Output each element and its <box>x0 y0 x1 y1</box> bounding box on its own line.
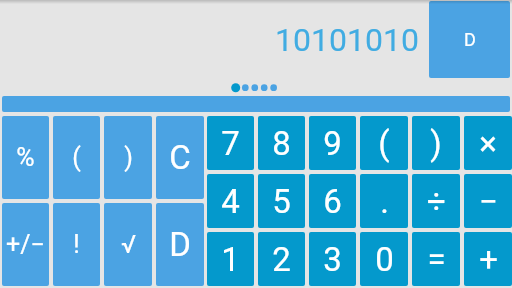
button[interactable]: 2 <box>258 232 305 286</box>
button[interactable]: % <box>2 116 49 199</box>
staticText: % <box>16 143 35 172</box>
button[interactable]: D <box>156 203 204 286</box>
button[interactable]: − <box>464 174 512 228</box>
staticText: +/− <box>6 230 45 259</box>
button[interactable]: ( <box>360 116 408 170</box>
staticText: + <box>479 240 498 279</box>
button[interactable]: 7 <box>207 116 254 170</box>
staticText: ( <box>72 143 81 172</box>
staticText: 6 <box>323 182 342 221</box>
staticText: 7 <box>221 124 240 163</box>
button[interactable]: 1 <box>207 232 254 286</box>
staticText: ! <box>73 230 80 259</box>
button[interactable]: ( <box>53 116 100 199</box>
button[interactable]: = <box>412 232 460 286</box>
staticText: 5 <box>272 182 291 221</box>
staticText: 0 <box>375 240 394 279</box>
staticText: ( <box>378 124 390 163</box>
button[interactable]: + <box>464 232 512 286</box>
button[interactable]: ) <box>104 116 152 199</box>
button[interactable]: +/− <box>2 203 49 286</box>
button[interactable]: 5 <box>258 174 305 228</box>
button[interactable]: 4 <box>207 174 254 228</box>
button[interactable]: D <box>429 1 510 78</box>
button[interactable]: C <box>156 116 204 199</box>
staticText: D <box>464 29 476 50</box>
button[interactable]: ) <box>412 116 460 170</box>
staticText: 10101010 <box>275 21 419 59</box>
button[interactable]: ! <box>53 203 100 286</box>
staticText: − <box>479 182 498 221</box>
button[interactable]: . <box>360 174 408 228</box>
staticText: ) <box>430 124 442 163</box>
staticText: = <box>427 240 446 279</box>
button[interactable]: 6 <box>309 174 356 228</box>
staticText: 8 <box>272 124 291 163</box>
button[interactable]: √ <box>104 203 152 286</box>
staticText: ÷ <box>427 182 446 221</box>
staticText: 2 <box>272 240 291 279</box>
staticText: D <box>169 225 191 264</box>
staticText: √ <box>121 230 136 259</box>
staticText: . <box>380 182 389 221</box>
staticText: ) <box>124 143 133 172</box>
button[interactable]: ÷ <box>412 174 460 228</box>
button[interactable]: 8 <box>258 116 305 170</box>
button[interactable]: × <box>464 116 512 170</box>
staticText: 1 <box>221 240 240 279</box>
staticText: 3 <box>323 240 342 279</box>
button[interactable]: 3 <box>309 232 356 286</box>
staticText: × <box>479 124 497 163</box>
button[interactable]: 9 <box>309 116 356 170</box>
staticText: C <box>169 138 191 177</box>
button[interactable]: 0 <box>360 232 408 286</box>
staticText: 4 <box>221 182 240 221</box>
staticText: 9 <box>323 124 342 163</box>
